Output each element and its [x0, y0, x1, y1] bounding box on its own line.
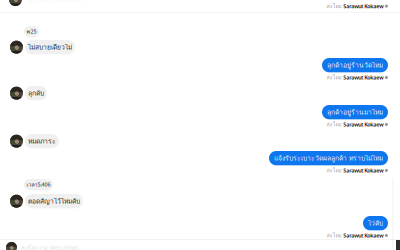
staticText: Sarawut Kokaew	[343, 121, 383, 128]
staticText: Sarawut Kokaew	[343, 232, 383, 239]
staticText: ไม่สบายเดียวไม่	[28, 42, 72, 52]
staticText: เวลา5,406	[26, 181, 50, 189]
staticText: หมดภาระ	[28, 136, 56, 146]
staticText: ส่งโดย	[327, 120, 342, 129]
button[interactable]: ไม่สบายเดียวไม่	[10, 40, 75, 54]
button[interactable]: แจ้งรับระเบาะวัดผลลูกค้า ทราบไม่ไหม	[269, 151, 388, 175]
button[interactable]: ไว่คับ	[327, 216, 388, 240]
staticText: ส่งข้อความ Messenger...	[21, 243, 80, 250]
staticText: Sarawut Kokaew	[343, 167, 383, 174]
staticText: พ25	[26, 28, 36, 36]
staticText: ตอดสัญาไว้ไหมคับ	[28, 196, 80, 206]
staticText: Sarawut Kokaew	[343, 74, 383, 81]
staticText: ส่งโดย	[327, 231, 342, 240]
staticText: ไว่คับ	[368, 218, 383, 228]
button[interactable]: ลุกค้าอยู่ร้านวัดไหม	[322, 58, 388, 82]
button[interactable]: ลุกค้าอยู่ร้านมาไหม	[322, 105, 388, 129]
button[interactable]: ตอดสัญาไว้ไหมคับ	[10, 194, 83, 208]
staticText: ส่งโดย	[327, 2, 342, 10]
staticText: ส่งโดย	[327, 166, 342, 175]
button[interactable]: หมดภาระ	[10, 134, 59, 148]
staticText: ลุกค้าอยู่ร้านมาไหม	[327, 107, 383, 117]
staticText: ลุกค้าอยู่ร้านวัดไหม	[327, 60, 383, 70]
staticText: ลุกคับ	[28, 88, 44, 98]
staticText: ส่งโดย	[327, 73, 342, 82]
button[interactable]: ลุกคับ	[10, 86, 47, 100]
staticText: แจ้งรับระเบาะวัดผลลูกค้า ทราบไม่ไหม	[274, 153, 383, 163]
staticText: Sarawut Kokaew	[343, 3, 383, 10]
